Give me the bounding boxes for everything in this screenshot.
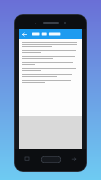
button[interactable] xyxy=(22,42,79,113)
button[interactable]: Back xyxy=(19,29,29,39)
button[interactable]: Back xyxy=(71,156,77,162)
button[interactable]: Back xyxy=(19,29,82,39)
button[interactable]: Home xyxy=(41,156,61,163)
button[interactable]: Recents xyxy=(24,156,30,162)
